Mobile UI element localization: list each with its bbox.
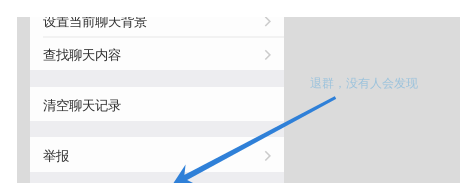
button[interactable]: 查找聊天内容 <box>30 38 284 70</box>
staticText: 设置当前聊天背景 <box>43 13 147 30</box>
button[interactable]: 清空聊天记录 <box>30 87 284 121</box>
button[interactable]: 设置当前聊天背景 <box>30 17 284 36</box>
button[interactable]: 举报 <box>30 137 284 172</box>
staticText: 查找聊天内容 <box>43 47 121 63</box>
staticText: 退群，没有人会发现 <box>310 76 418 91</box>
staticText: 清空聊天记录 <box>43 97 121 114</box>
staticText: 举报 <box>43 148 69 164</box>
